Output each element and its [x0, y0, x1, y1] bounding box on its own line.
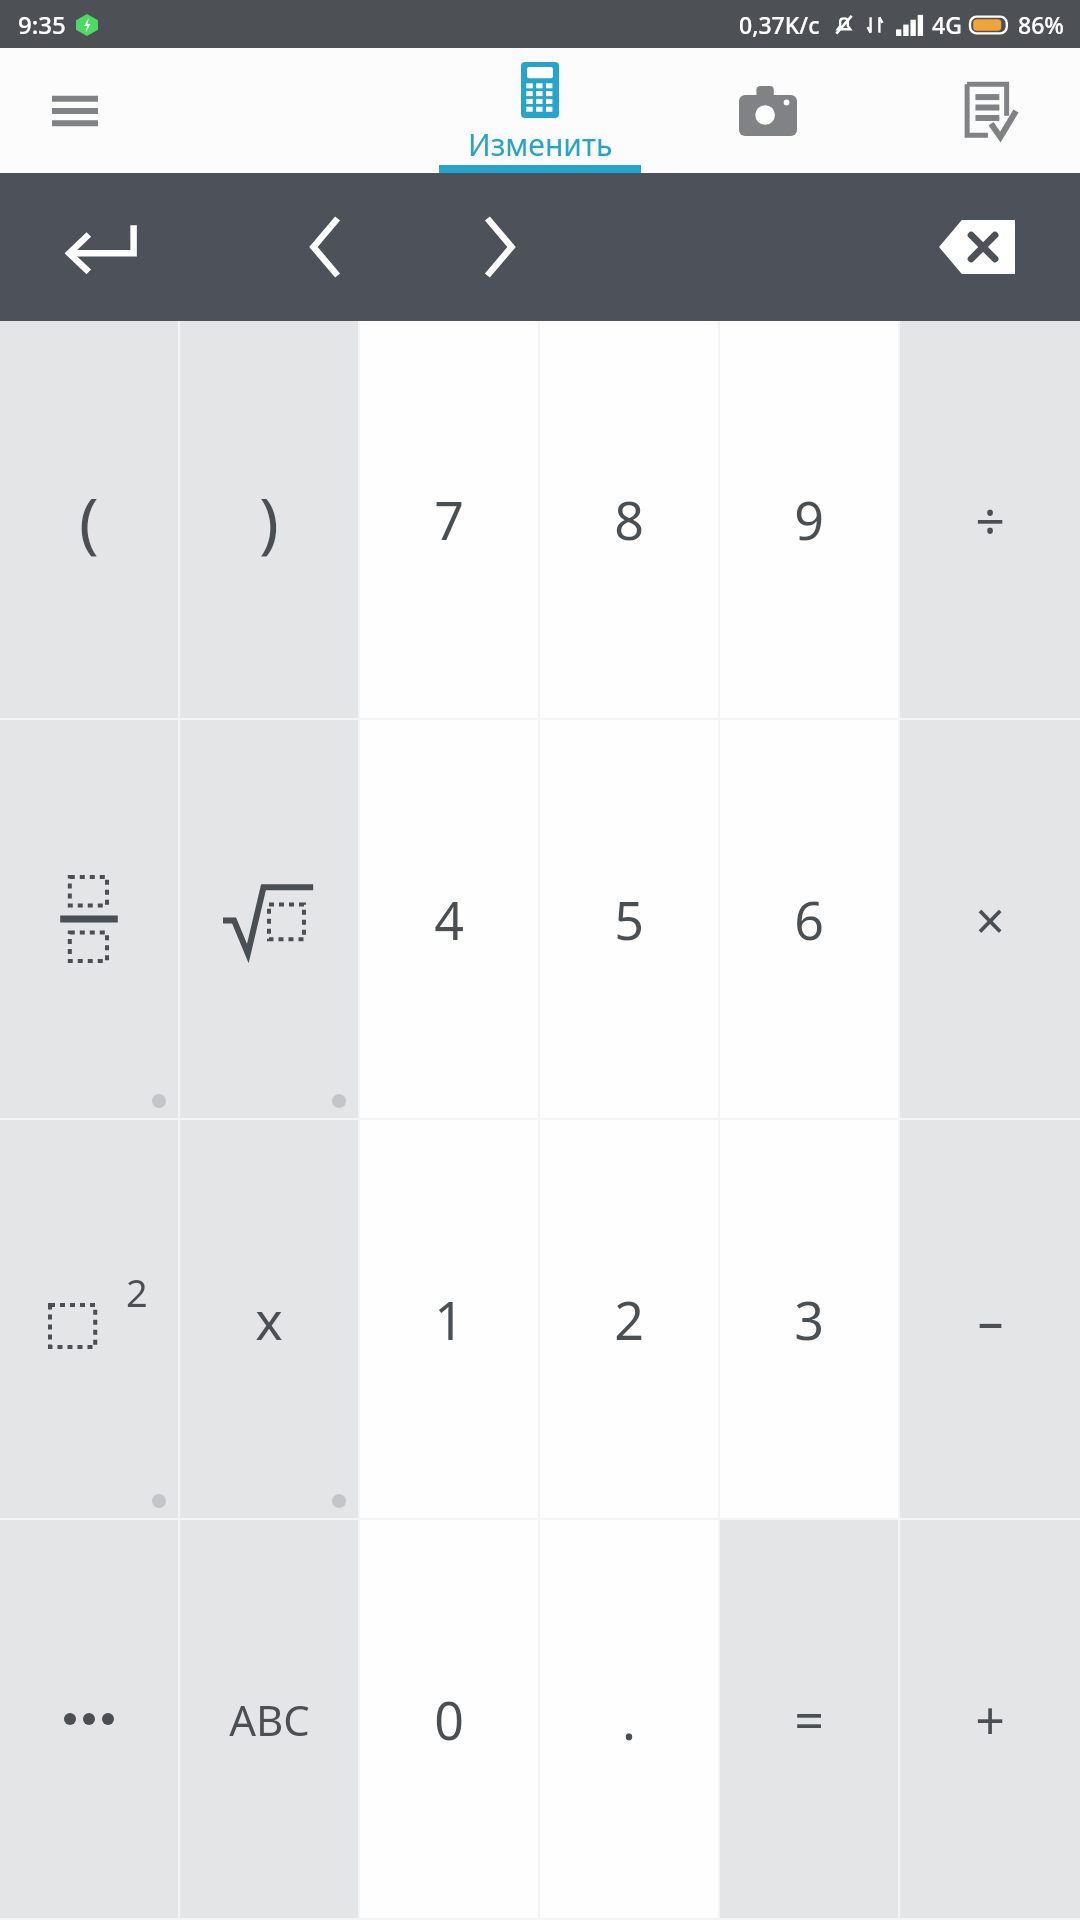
- button[interactable]: Camera: [723, 66, 813, 156]
- button[interactable]: 5: [540, 720, 718, 1118]
- staticText: Изменить: [468, 124, 613, 165]
- staticText: 8: [614, 484, 644, 555]
- staticText: 0: [434, 1684, 464, 1755]
- button[interactable]: Изменить: [415, 48, 665, 173]
- staticText: 9: [794, 484, 824, 555]
- button[interactable]: 9: [720, 321, 898, 718]
- staticText: 86%: [1018, 9, 1064, 40]
- staticText: 2: [126, 1266, 148, 1318]
- button[interactable]: x: [180, 1120, 358, 1518]
- staticText: ): [259, 475, 279, 565]
- staticText: ÷: [975, 484, 1005, 555]
- button[interactable]: 0: [360, 1520, 538, 1918]
- staticText: (: [79, 475, 99, 565]
- staticText: 7: [434, 484, 464, 555]
- staticText: 6: [794, 884, 824, 955]
- button[interactable]: 8: [540, 321, 718, 718]
- button[interactable]: Next: [450, 197, 550, 297]
- button[interactable]: 4: [360, 720, 538, 1118]
- button[interactable]: Square root: [180, 720, 358, 1118]
- staticText: 0,37K/c: [739, 9, 820, 40]
- staticText: =: [794, 1684, 824, 1755]
- staticText: +: [975, 1684, 1005, 1755]
- button[interactable]: –: [900, 1120, 1080, 1518]
- button[interactable]: Fraction: [0, 720, 178, 1118]
- button[interactable]: ABC: [180, 1520, 358, 1918]
- button[interactable]: 2: [540, 1120, 718, 1518]
- button[interactable]: 6: [720, 720, 898, 1118]
- staticText: 4G: [932, 9, 962, 40]
- staticText: x: [255, 1284, 283, 1355]
- staticText: .: [622, 1684, 636, 1755]
- button[interactable]: .: [540, 1520, 718, 1918]
- button[interactable]: +: [900, 1520, 1080, 1918]
- staticText: 5: [614, 884, 644, 955]
- button[interactable]: 7: [360, 321, 538, 718]
- button[interactable]: Backspace: [922, 192, 1032, 302]
- button[interactable]: Solutions: [945, 66, 1035, 156]
- staticText: –: [977, 1284, 1004, 1355]
- button[interactable]: 1: [360, 1120, 538, 1518]
- button[interactable]: ÷: [900, 321, 1080, 718]
- button[interactable]: Power: [0, 1120, 178, 1518]
- button[interactable]: 3: [720, 1120, 898, 1518]
- staticText: 4: [434, 884, 464, 955]
- staticText: 1: [434, 1284, 464, 1355]
- staticText: ABC: [229, 1691, 310, 1748]
- button[interactable]: Menu: [40, 76, 110, 146]
- button[interactable]: ×: [900, 720, 1080, 1118]
- button[interactable]: ): [180, 321, 358, 718]
- button[interactable]: Previous: [275, 197, 375, 297]
- button[interactable]: =: [720, 1520, 898, 1918]
- staticText: 2: [614, 1284, 644, 1355]
- staticText: 3: [794, 1284, 824, 1355]
- staticText: 9:35: [18, 8, 66, 41]
- staticText: ×: [975, 884, 1005, 955]
- button[interactable]: (: [0, 321, 178, 718]
- button[interactable]: More: [0, 1520, 178, 1918]
- button[interactable]: Enter: [50, 197, 150, 297]
